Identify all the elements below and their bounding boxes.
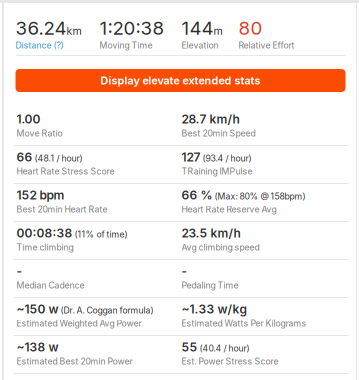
staticText: Time climbing	[16, 242, 73, 253]
staticText: Estimated Watts Per Kilograms	[181, 318, 306, 329]
staticText: 66 % (Max: 80% @ 158bpm)	[181, 188, 305, 202]
button[interactable]: Display elevate extended stats	[15, 69, 345, 92]
staticText: ~150 w (Dr. A. Coggan formula)	[16, 302, 153, 316]
staticText: 28.7 km/h	[181, 112, 239, 126]
staticText: 144m	[181, 17, 222, 39]
staticText: 127 (93.4 / hour)	[181, 150, 251, 164]
staticText: Heart Rate Reserve Avg	[181, 204, 276, 215]
staticText: Best 20min Speed	[181, 128, 255, 139]
staticText: Pedaling Time	[181, 280, 238, 291]
staticText: Move Ratio	[16, 128, 62, 139]
staticText: Elevation	[181, 40, 218, 50]
staticText: Moving Time	[99, 40, 152, 50]
staticText: 1.00	[16, 112, 40, 126]
staticText: Est. Power Stress Score	[181, 356, 278, 367]
staticText: Distance (?)	[15, 40, 63, 50]
staticText: Estimated Best 20min Power	[16, 356, 132, 367]
staticText: Best 20min Heart Rate	[16, 204, 107, 215]
staticText: 36.24km	[15, 17, 81, 39]
staticText: 152 bpm	[16, 188, 64, 202]
staticText: Display elevate extended stats	[100, 74, 260, 87]
staticText: Heart Rate Stress Score	[16, 166, 114, 177]
staticText: Median Cadence	[16, 280, 84, 291]
staticText: 55 (40.4 / hour)	[181, 340, 249, 354]
staticText: 66 (48.1 / hour)	[16, 150, 82, 164]
staticText: 1:20:38	[99, 17, 164, 39]
staticText: ~138 w	[16, 340, 58, 354]
staticText: Avg climbing speed	[181, 242, 259, 253]
staticText: Estimated Weighted Avg Power	[16, 318, 141, 329]
staticText: 80	[238, 17, 262, 39]
staticText: Relative Effort	[238, 40, 294, 50]
staticText: 00:08:38 (11% of time)	[16, 226, 127, 240]
staticText: -	[16, 264, 22, 278]
staticText: -	[181, 264, 187, 278]
staticText: ~1.33 w/kg	[181, 302, 247, 316]
staticText: TRaining IMPulse	[181, 166, 252, 177]
staticText: 23.5 km/h	[181, 226, 240, 240]
